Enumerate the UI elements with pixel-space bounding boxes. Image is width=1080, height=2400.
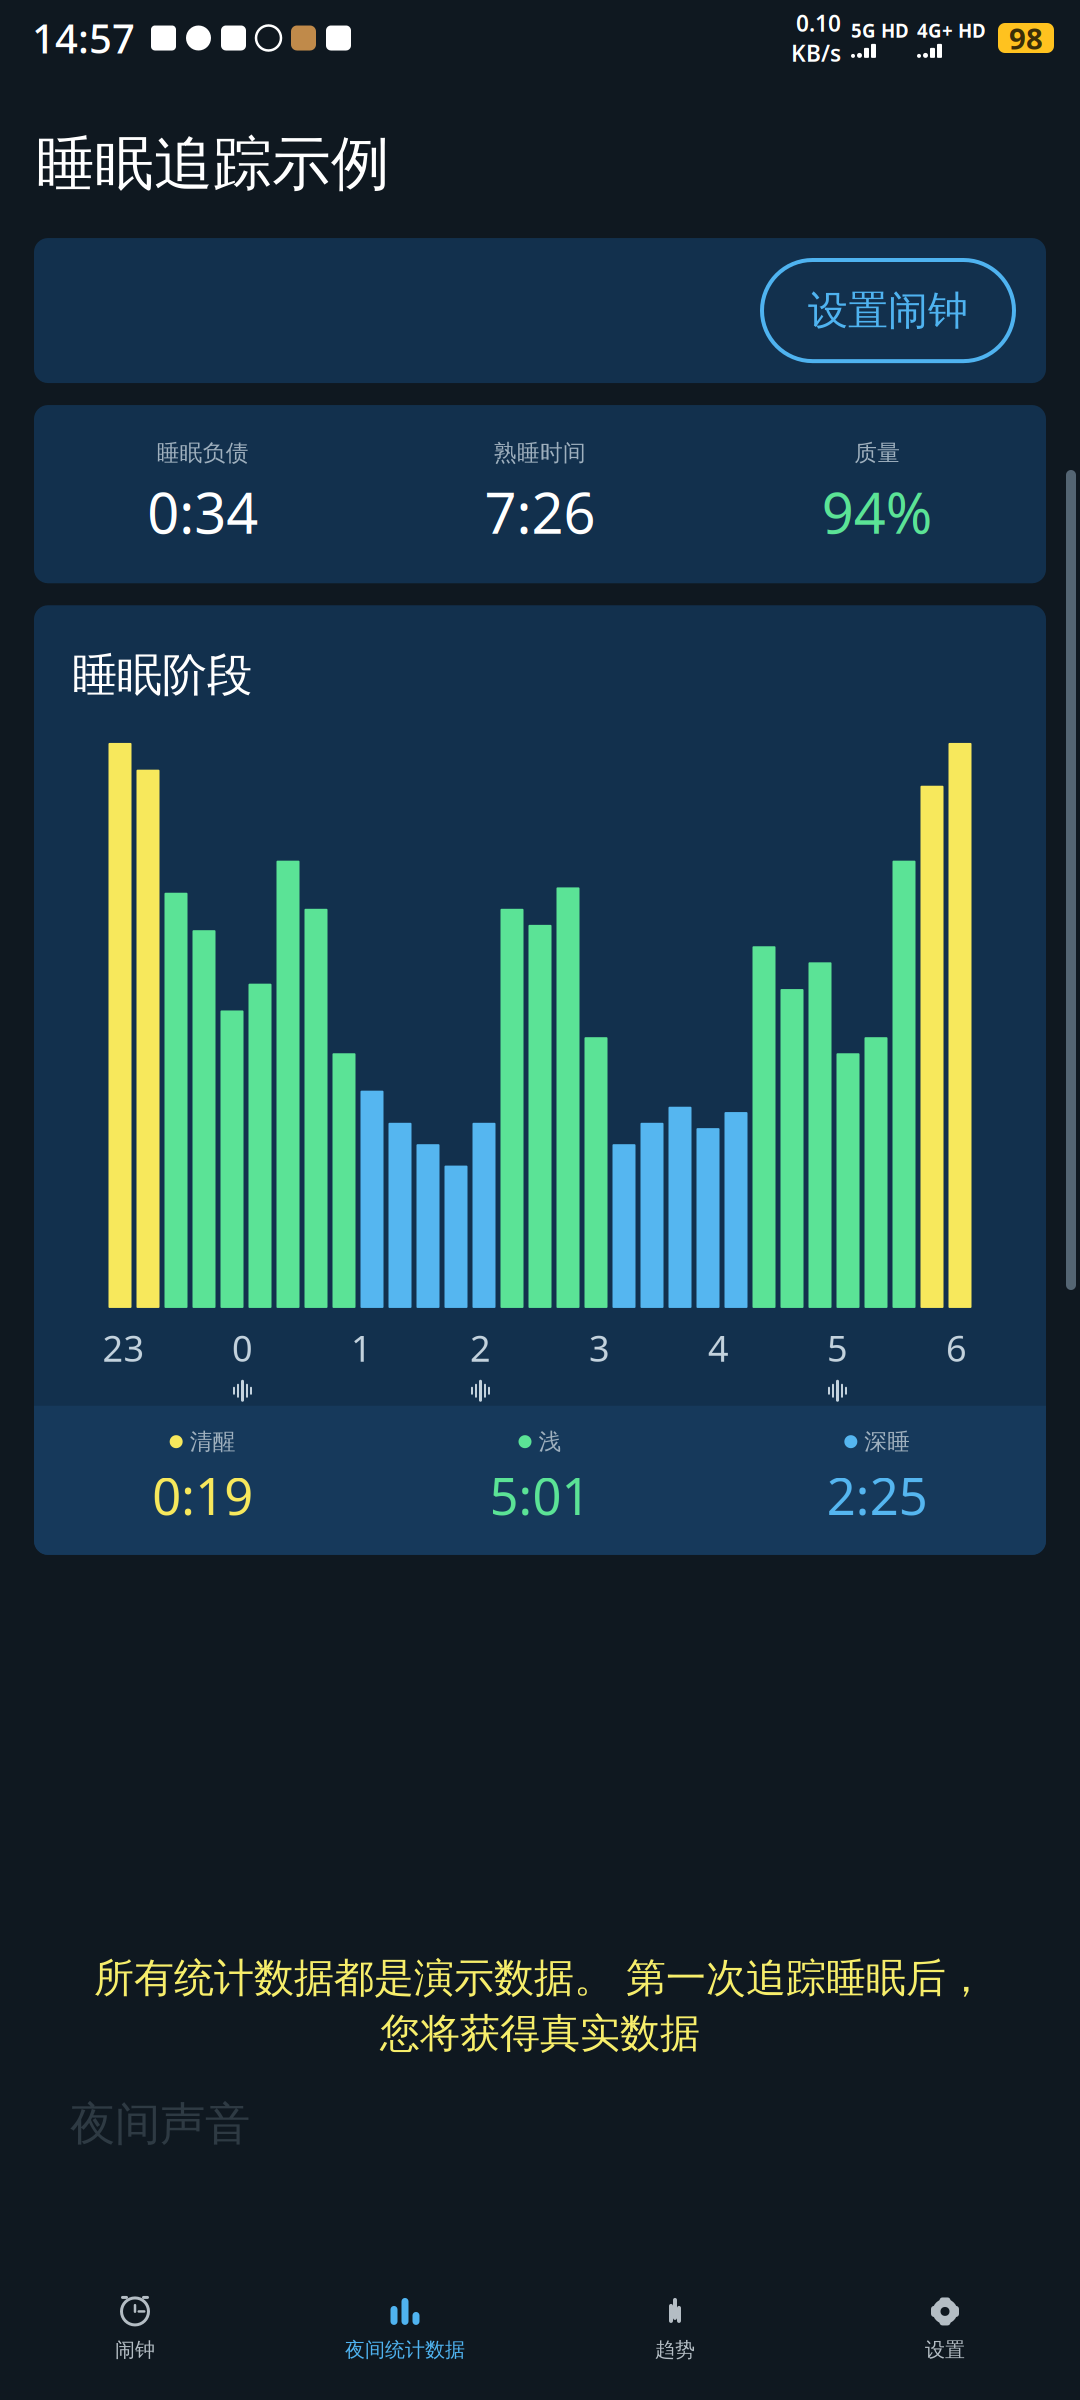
button[interactable]: 趋势 [540,2286,810,2370]
staticText: 7:26 [484,475,595,549]
staticText: 睡眠负债 [157,439,249,467]
staticText: 1 [351,1324,372,1372]
staticText: 质量 [854,439,900,467]
staticText: 所有统计数据都是演示数据。 第一次追踪睡眠后， [94,1954,986,2003]
staticText: 清醒 [190,1428,236,1456]
staticText: 23 [102,1324,144,1372]
staticText: 5 [827,1324,848,1372]
staticText: 睡眠追踪示例 [36,128,390,200]
staticText: 趋势 [655,2337,695,2362]
staticText: 您将获得真实数据 [380,2009,700,2058]
staticText: 睡眠阶段 [72,647,252,703]
button[interactable]: 闹钟 [0,2286,270,2370]
staticText: 98 [1009,18,1043,57]
staticText: 4 [708,1324,729,1372]
staticText: 0 [232,1324,253,1372]
staticText: 4G+ HD [917,18,986,43]
staticText: KB/s [791,38,841,68]
staticText: 94% [822,475,933,549]
staticText: 0:34 [147,475,258,549]
staticText: 6 [946,1324,967,1372]
staticText: 0.10 [796,8,841,38]
staticText: 2:25 [827,1462,928,1529]
button[interactable]: 设置 [810,2286,1080,2370]
staticText: 浅 [538,1428,561,1456]
staticText: 熟睡时间 [494,439,586,467]
staticText: 5G HD [851,18,909,43]
staticText: 14:57 [32,11,135,64]
staticText: 2 [470,1324,491,1372]
staticText: 深睡 [864,1428,910,1456]
staticText: 夜间声音 [70,2096,250,2152]
button[interactable]: 夜间统计数据 [270,2286,540,2370]
staticText: 3 [589,1324,610,1372]
staticText: 设置闹钟 [808,286,968,335]
button[interactable]: 设置闹钟 [762,260,1014,361]
staticText: 设置 [925,2337,965,2362]
staticText: 5:01 [489,1462,590,1529]
staticText: 闹钟 [115,2337,155,2362]
staticText: 0:19 [152,1462,253,1529]
staticText: 夜间统计数据 [345,2337,465,2362]
